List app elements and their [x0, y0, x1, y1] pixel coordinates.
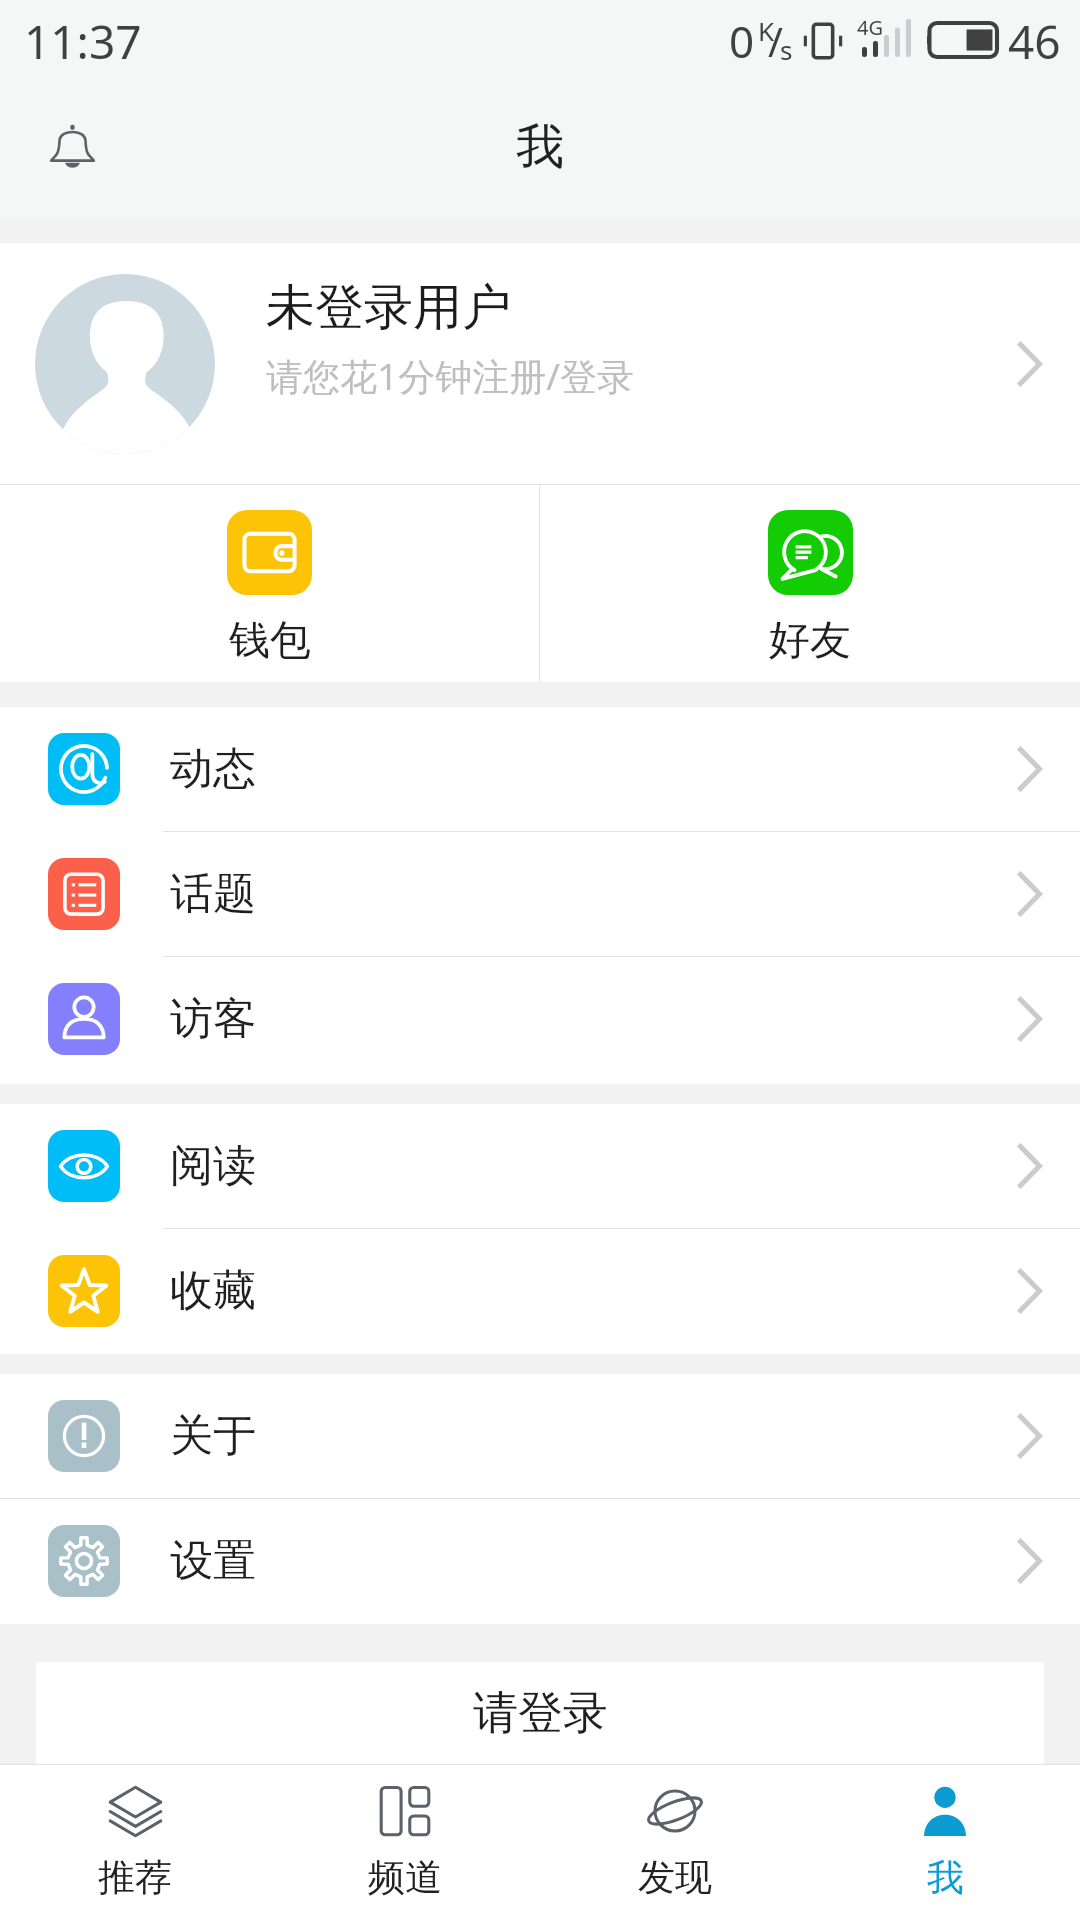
staticText: 推荐: [98, 1854, 172, 1901]
staticText: 阅读: [170, 1139, 256, 1193]
staticText: 4G: [857, 14, 883, 41]
staticText: 访客: [170, 992, 256, 1046]
staticText: 请您花1分钟注册/登录: [266, 350, 634, 401]
button[interactable]: 访客: [0, 957, 1080, 1081]
button[interactable]: 动态: [0, 707, 1080, 831]
staticText: 话题: [170, 867, 256, 921]
button[interactable]: Notifications: [24, 103, 120, 199]
staticText: 46: [1008, 10, 1061, 73]
button[interactable]: 发现: [540, 1765, 810, 1920]
button[interactable]: 频道: [270, 1765, 540, 1920]
staticText: 设置: [170, 1534, 256, 1588]
staticText: 我: [516, 117, 564, 177]
button[interactable]: 推荐: [0, 1765, 270, 1920]
staticText: 动态: [170, 742, 256, 796]
staticText: 未登录用户: [266, 277, 511, 339]
staticText: 发现: [638, 1854, 712, 1901]
button[interactable]: 设置: [0, 1499, 1080, 1623]
button[interactable]: 话题: [0, 832, 1080, 956]
staticText: /: [768, 14, 783, 68]
staticText: 我: [927, 1854, 964, 1901]
button[interactable]: 我: [810, 1765, 1080, 1920]
button[interactable]: 收藏: [0, 1229, 1080, 1353]
staticText: s: [780, 32, 793, 67]
button[interactable]: 未登录用户: [0, 243, 1080, 484]
staticText: 请登录: [473, 1685, 608, 1742]
button[interactable]: 请登录: [36, 1662, 1044, 1764]
staticText: 收藏: [170, 1264, 256, 1318]
button[interactable]: 好友: [540, 485, 1080, 682]
staticText: K: [758, 13, 775, 48]
button[interactable]: 钱包: [0, 485, 539, 682]
button[interactable]: 关于: [0, 1374, 1080, 1498]
staticText: 频道: [368, 1854, 442, 1901]
staticText: 好友: [769, 615, 851, 667]
staticText: 0: [729, 11, 755, 71]
button[interactable]: 阅读: [0, 1104, 1080, 1228]
staticText: 关于: [170, 1409, 256, 1463]
staticText: 11:37: [24, 10, 142, 73]
staticText: 钱包: [229, 615, 311, 667]
